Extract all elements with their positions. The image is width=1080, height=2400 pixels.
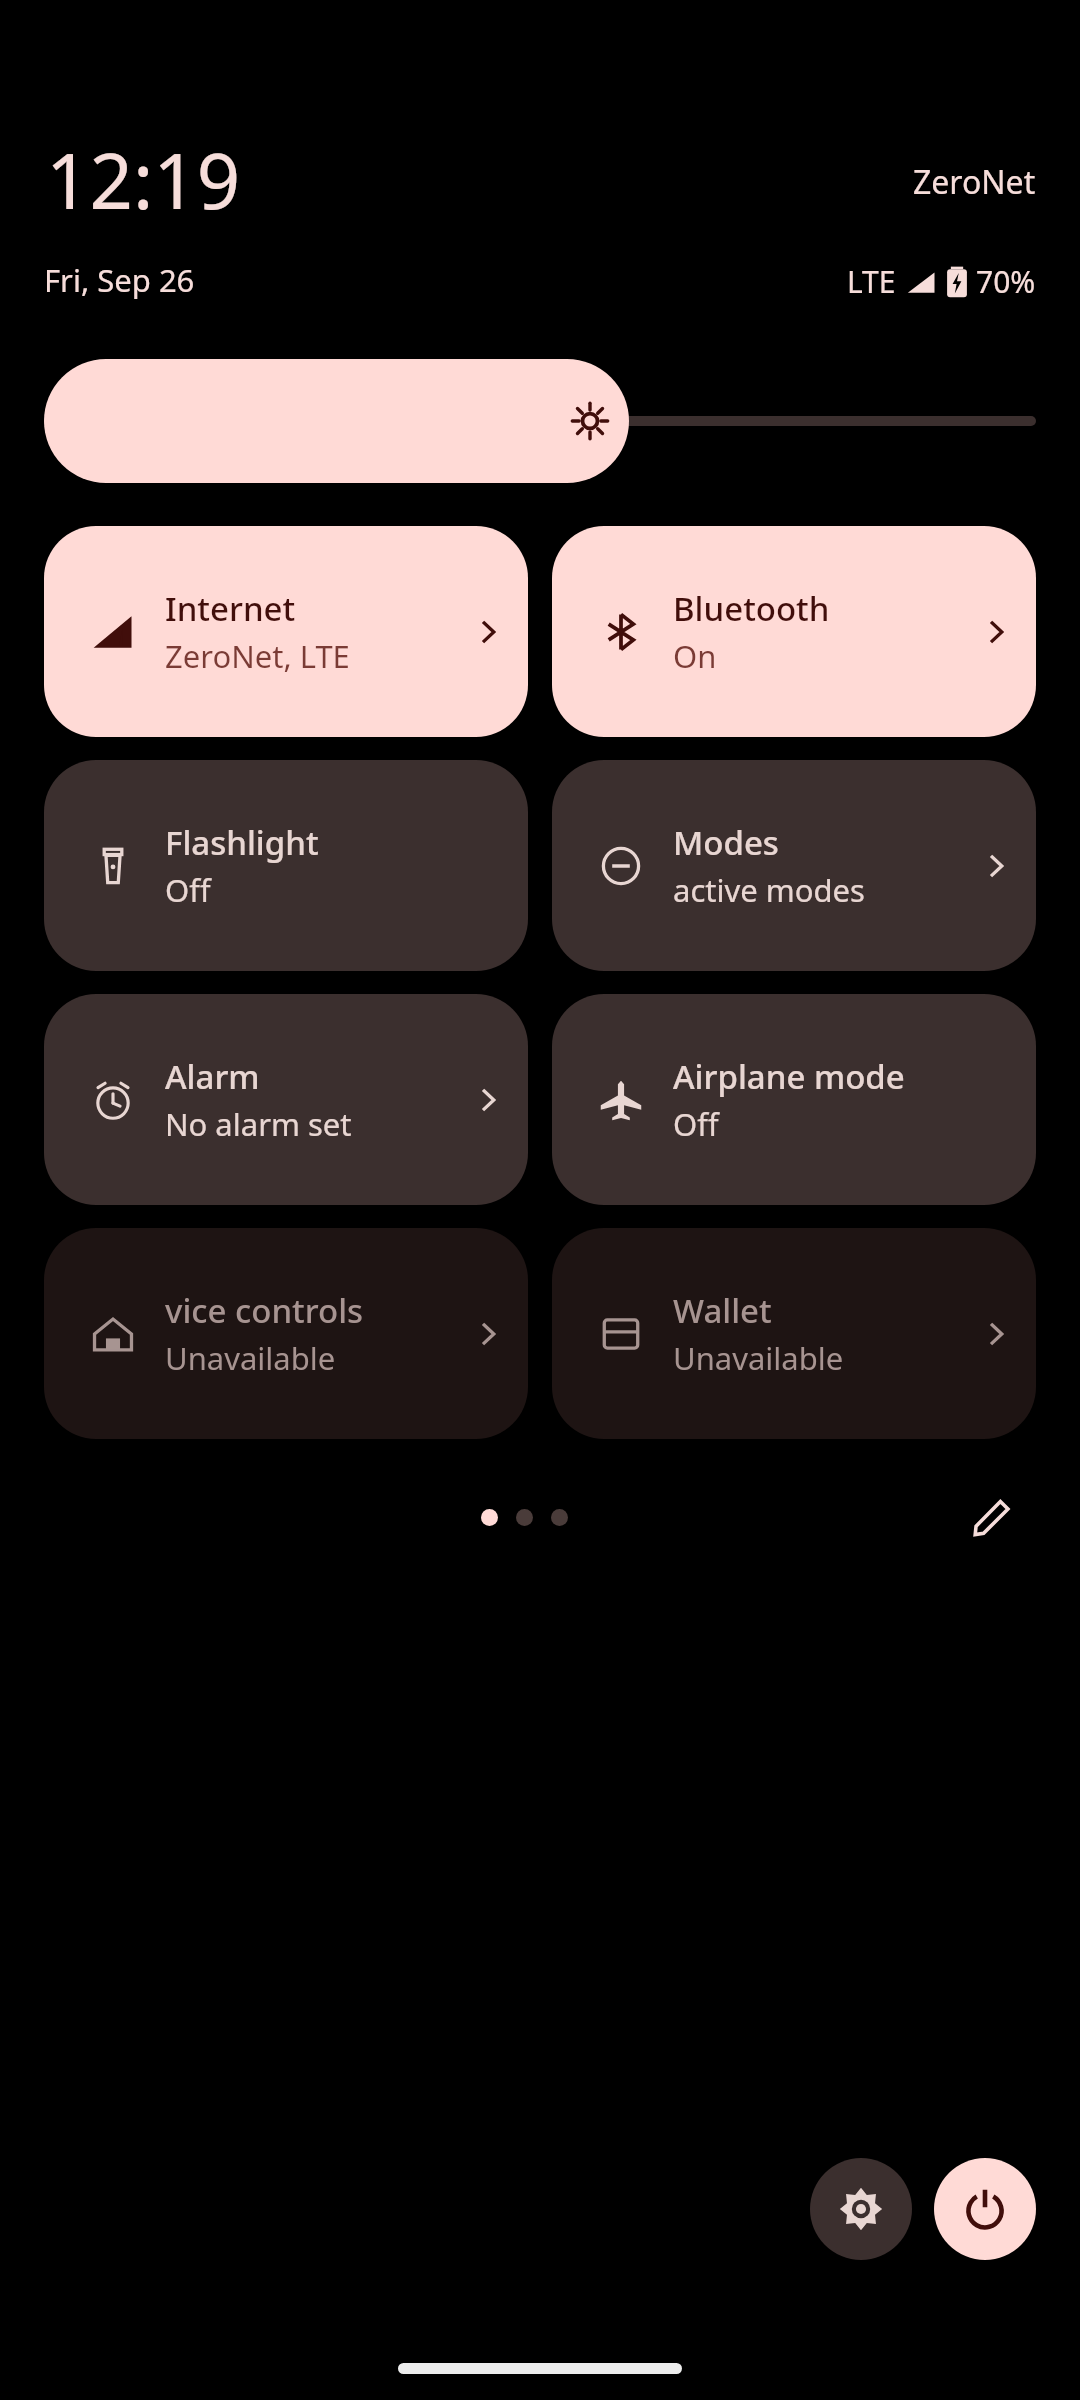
staticText: Fri, Sep 26 <box>44 259 195 301</box>
staticText: Off <box>673 1103 719 1145</box>
staticText: Bluetooth <box>673 586 830 631</box>
button[interactable] <box>44 359 1036 483</box>
button[interactable]: Flashlight <box>44 760 528 971</box>
button[interactable]: Bluetooth <box>552 526 1036 737</box>
button[interactable]: Airplane mode <box>552 994 1036 1205</box>
staticText: Off <box>165 869 211 911</box>
staticText: ZeroNet, LTE <box>165 635 350 677</box>
staticText: Alarm <box>165 1054 260 1099</box>
staticText: Unavailable <box>673 1337 844 1379</box>
staticText: Unavailable <box>165 1337 336 1379</box>
staticText: Wallet <box>673 1288 772 1333</box>
button[interactable]: Settings <box>810 2158 912 2260</box>
button[interactable]: vice controls <box>44 1228 528 1439</box>
staticText: ZeroNet <box>913 160 1036 204</box>
staticText: Flashlight <box>165 820 319 865</box>
button[interactable]: Internet <box>44 526 528 737</box>
staticText: 70% <box>976 261 1036 302</box>
button[interactable]: Power <box>934 2158 1036 2260</box>
button[interactable]: Modes <box>552 760 1036 971</box>
staticText: 12:19 <box>46 128 241 232</box>
button[interactable]: Edit tiles <box>964 1489 1020 1545</box>
staticText: No alarm set <box>165 1103 352 1145</box>
staticText: LTE <box>847 261 896 302</box>
staticText: Airplane mode <box>673 1054 905 1099</box>
staticText: On <box>673 635 717 677</box>
button[interactable]: Wallet <box>552 1228 1036 1439</box>
staticText: Modes <box>673 820 779 865</box>
staticText: Internet <box>165 586 296 631</box>
staticText: active modes <box>673 869 865 911</box>
button[interactable]: Alarm <box>44 994 528 1205</box>
staticText: vice controls <box>165 1288 364 1333</box>
